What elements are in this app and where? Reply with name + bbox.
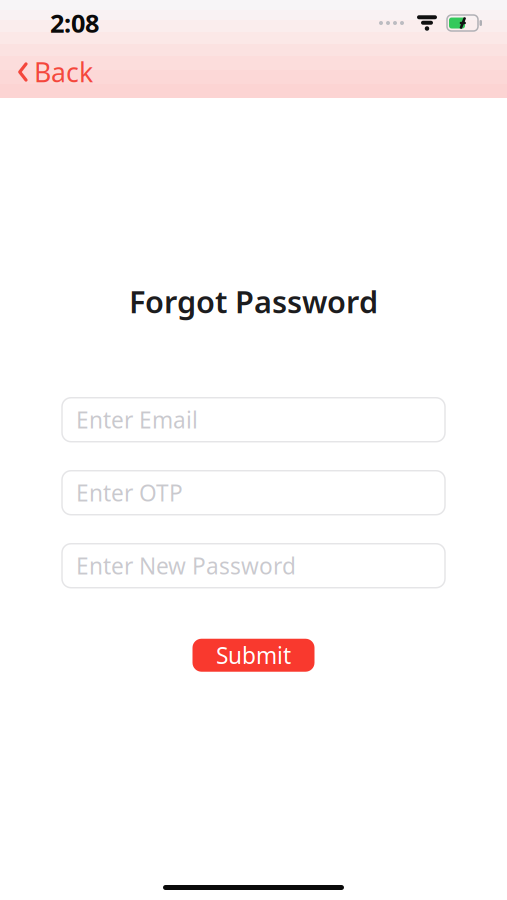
staticText: Submit — [216, 640, 291, 670]
staticText: 2:08 — [50, 6, 99, 40]
button[interactable]: Submit — [192, 639, 314, 672]
staticText: Forgot Password — [129, 281, 378, 322]
button[interactable]: Back — [0, 46, 105, 98]
staticText: Enter New Password — [76, 551, 296, 581]
staticText: Enter OTP — [76, 478, 183, 508]
staticText: Back — [34, 54, 93, 90]
staticText: Enter Email — [76, 405, 198, 435]
